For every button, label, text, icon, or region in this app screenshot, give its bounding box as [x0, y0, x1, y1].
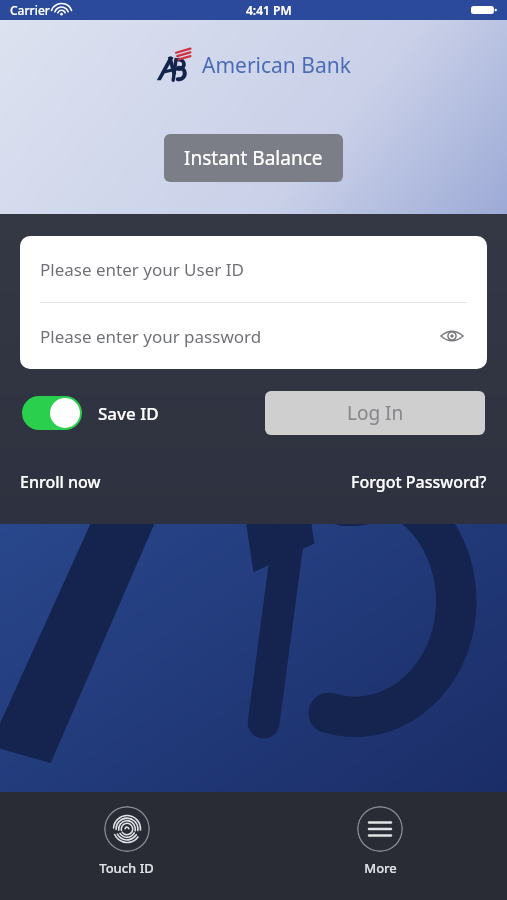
button[interactable]: Please enter your password	[20, 303, 487, 369]
staticText: Log In	[347, 400, 404, 426]
button[interactable]: Please enter your User ID	[20, 236, 487, 302]
staticText: Please enter your User ID	[40, 258, 244, 281]
button[interactable]: Show password	[437, 321, 467, 351]
button[interactable]: Touch ID	[81, 792, 172, 885]
staticText: More	[364, 859, 397, 877]
staticText: Enroll now	[20, 471, 101, 493]
staticText: Forgot Password?	[351, 471, 487, 493]
button[interactable]: Log In	[265, 391, 485, 435]
staticText: Please enter your password	[40, 325, 262, 348]
staticText: Save ID	[98, 402, 159, 425]
staticText: Touch ID	[99, 859, 154, 877]
staticText: Instant Balance	[184, 145, 323, 171]
staticText: 4:41 PM	[246, 2, 292, 18]
staticText: Carrier	[10, 2, 50, 18]
button[interactable]: Save ID toggle	[22, 396, 82, 430]
button[interactable]: Instant Balance	[164, 134, 343, 182]
button[interactable]: Enroll now	[20, 467, 101, 497]
button[interactable]: More	[339, 792, 421, 885]
button[interactable]: Forgot Password?	[351, 467, 487, 497]
staticText: American Bank	[202, 51, 351, 80]
